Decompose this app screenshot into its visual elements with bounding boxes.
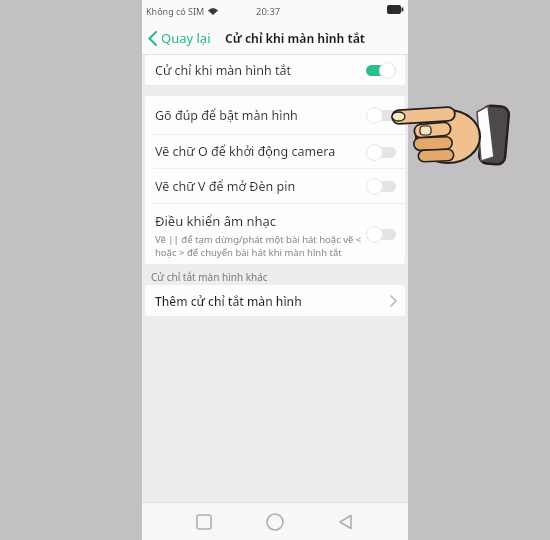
staticText: Không có SIM xyxy=(146,5,205,17)
button[interactable]: Thêm cử chỉ tắt màn hình xyxy=(155,285,397,316)
staticText: Vẽ || để tạm dừng/phát một bài hát hoặc … xyxy=(155,233,362,259)
button[interactable]: Điều khiển âm nhạc xyxy=(155,204,396,264)
button[interactable]: Cử chỉ khi màn hình tắt xyxy=(155,55,396,85)
staticText: Cử chỉ khi màn hình tắt xyxy=(155,62,292,79)
button[interactable] xyxy=(196,513,212,531)
staticText: Gõ đúp để bật màn hình xyxy=(155,107,298,124)
button[interactable] xyxy=(338,513,354,531)
staticText: Vẽ chữ V để mở Đèn pin xyxy=(155,178,296,195)
staticText: 20:37 xyxy=(256,5,281,18)
button[interactable]: Vẽ chữ V để mở Đèn pin xyxy=(155,169,396,203)
button[interactable]: Gõ đúp để bật màn hình xyxy=(155,96,396,134)
button[interactable] xyxy=(266,513,284,531)
staticText: Thêm cử chỉ tắt màn hình xyxy=(155,293,302,309)
staticText: Điều khiển âm nhạc xyxy=(155,212,277,230)
button[interactable]: Quay lại xyxy=(148,29,211,47)
staticText: Vẽ chữ O để khởi động camera xyxy=(155,143,336,160)
staticText: Cử chỉ khi màn hình tắt xyxy=(225,30,366,46)
staticText: Quay lại xyxy=(161,29,211,47)
staticText: Cử chỉ tắt màn hình khác xyxy=(151,270,268,284)
button[interactable]: Vẽ chữ O để khởi động camera xyxy=(155,135,396,168)
